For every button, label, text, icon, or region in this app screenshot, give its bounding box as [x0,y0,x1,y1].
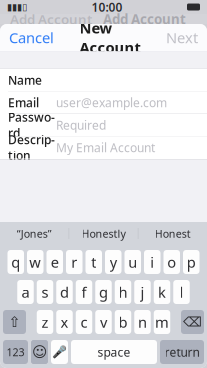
staticText: k [158,282,166,302]
button[interactable]: d [56,280,73,304]
staticText: x [60,312,68,332]
staticText: a [21,282,29,302]
button[interactable]: y [105,250,121,274]
button[interactable]: s [37,280,53,304]
button[interactable]: Email [0,91,207,114]
button[interactable]: m [154,310,170,334]
staticText: Description [8,132,55,163]
staticText: d [60,282,69,302]
button[interactable]: space [71,340,157,364]
staticText: 🎤 [52,345,67,359]
staticText: i [150,252,154,272]
button[interactable]: Delete [181,310,204,334]
button[interactable]: g [95,280,112,304]
staticText: New Account [79,18,140,57]
button[interactable]: Password [0,114,207,136]
staticText: r [71,252,77,272]
button[interactable]: i [144,250,160,274]
button[interactable]: Numbers [3,340,28,364]
button[interactable]: c [76,310,92,334]
staticText: v [100,312,107,332]
staticText: t [91,252,96,272]
button[interactable]: Description [0,136,207,159]
button[interactable]: o [163,250,180,274]
staticText: s [41,282,48,302]
staticText: Honestly [81,226,125,241]
staticText: Add Account [103,10,186,28]
button[interactable]: z [37,310,53,334]
button[interactable]: Cancel [0,24,63,51]
button[interactable]: q [7,250,24,274]
staticText: ▮▮▮▯ [7,2,27,12]
staticText: Required [56,117,106,133]
button[interactable]: p [183,250,199,274]
staticText: ☺ [32,344,47,360]
button[interactable]: Shift [3,310,26,334]
staticText: g [99,282,108,302]
button[interactable]: e [46,250,63,274]
staticText: w [29,252,41,272]
staticText: q [11,252,20,272]
staticText: “Jones” [17,226,52,241]
staticText: l [179,282,183,302]
staticText: o [167,252,176,272]
staticText: b [118,312,127,332]
button[interactable]: x [56,310,73,334]
staticText: j [140,282,144,302]
button[interactable]: Name [0,69,207,91]
button[interactable]: r [66,250,82,274]
staticText: user@example.com [56,94,167,110]
staticText: Next [166,28,198,47]
button[interactable]: n [134,310,151,334]
staticText: Honest [155,226,191,241]
button[interactable]: u [124,250,141,274]
staticText: Add Account [10,10,92,28]
staticText: h [118,282,127,302]
staticText: ⌫ [183,314,202,329]
staticText: Email [8,94,39,110]
button[interactable]: b [115,310,131,334]
button[interactable]: t [85,250,102,274]
staticText: f [81,282,86,302]
button[interactable]: Next [157,24,207,51]
button[interactable]: v [95,310,112,334]
button[interactable]: Honest [138,222,207,245]
button[interactable]: Honestly [69,222,138,245]
staticText: e [51,252,59,272]
staticText: ⇧ [8,314,20,330]
button[interactable]: j [134,280,151,304]
staticText: m [155,312,169,332]
staticText: u [128,252,137,272]
staticText: 123 [6,345,24,359]
staticText: n [138,312,147,332]
staticText: z [41,312,48,332]
staticText: Password [8,109,55,141]
button[interactable]: f [76,280,92,304]
staticText: Name [8,72,42,88]
staticText: 10:00 [91,0,122,15]
staticText: p [187,252,196,272]
button[interactable]: a [17,280,34,304]
button[interactable]: Emoji [31,340,48,364]
staticText: My Email Account [56,139,155,155]
button[interactable]: “Jones” [0,222,69,245]
button[interactable]: l [173,280,190,304]
button[interactable]: h [115,280,131,304]
button[interactable]: Dictate [51,340,68,364]
staticText: Cancel [9,28,54,47]
staticText: space [97,344,130,360]
button[interactable]: w [27,250,43,274]
staticText: c [80,312,87,332]
button[interactable]: return [160,340,204,364]
staticText: y [110,252,117,272]
button[interactable]: k [154,280,170,304]
staticText: return [164,344,199,360]
